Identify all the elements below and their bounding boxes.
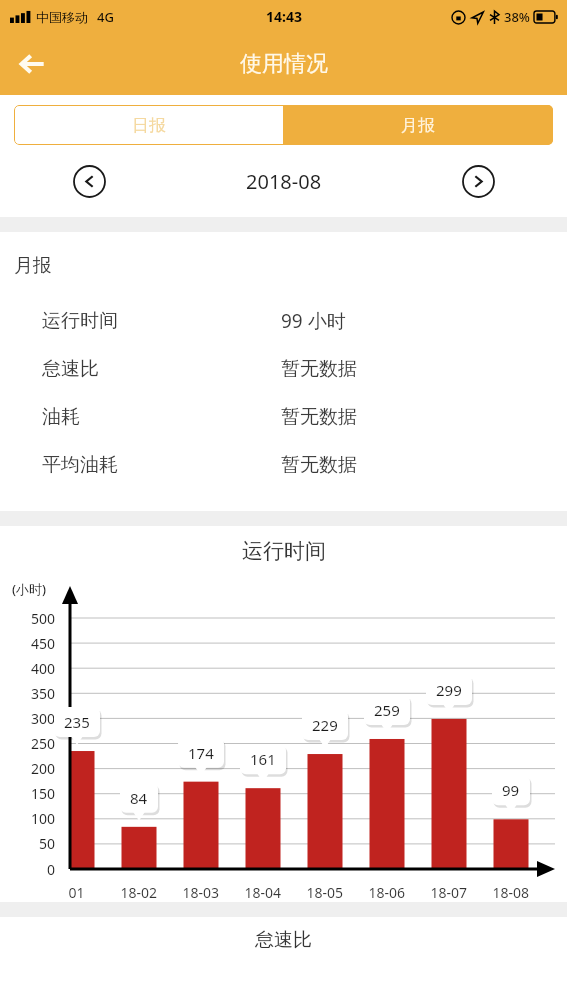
button[interactable]: 日报 — [14, 105, 283, 145]
staticText: 怠速比 — [42, 357, 99, 381]
button[interactable]: 油耗 — [0, 393, 567, 441]
staticText: 运行时间 — [242, 538, 326, 564]
staticText: 月报 — [401, 115, 435, 136]
staticText: 油耗 — [42, 405, 80, 429]
staticText: 2018-08 — [246, 168, 322, 195]
staticText: 怠速比 — [255, 928, 312, 952]
staticText: 日报 — [132, 115, 166, 136]
staticText: 暂无数据 — [281, 453, 357, 477]
staticText: 中国移动 — [36, 9, 88, 25]
staticText: 4G — [97, 8, 114, 26]
button[interactable]: 平均油耗 — [0, 441, 567, 489]
button[interactable]: 怠速比 — [0, 345, 567, 393]
staticText: 99 小时 — [281, 308, 346, 334]
staticText: 暂无数据 — [281, 405, 357, 429]
staticText: 38% — [504, 8, 530, 26]
button[interactable]: Back — [6, 38, 58, 90]
staticText: 14:43 — [266, 7, 302, 26]
staticText: 使用情况 — [240, 50, 328, 78]
staticText: 暂无数据 — [281, 357, 357, 381]
button[interactable]: Next month — [457, 160, 499, 202]
staticText: 月报 — [14, 254, 52, 278]
button[interactable]: 运行时间 — [0, 297, 567, 345]
staticText: 运行时间 — [42, 309, 118, 333]
staticText: 平均油耗 — [42, 453, 118, 477]
button[interactable]: 月报 — [283, 105, 553, 145]
button[interactable]: Previous month — [68, 160, 110, 202]
